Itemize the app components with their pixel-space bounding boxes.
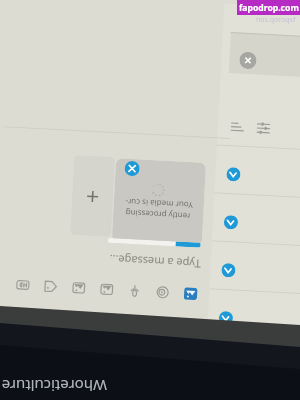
staticText: rently processing xyxy=(125,208,190,222)
button[interactable]: Sticker xyxy=(42,277,61,296)
button[interactable]: Gallery xyxy=(98,280,117,299)
button[interactable]: Photos xyxy=(182,285,201,304)
staticText: fapodrop.com xyxy=(239,2,299,14)
button[interactable] xyxy=(113,288,235,342)
button[interactable]: Camera xyxy=(70,279,89,298)
button[interactable]: Voice message xyxy=(126,282,145,301)
staticText: Whoreticulture xyxy=(1,376,107,396)
staticText: Your media is cur- xyxy=(125,197,193,211)
button[interactable] xyxy=(120,144,243,199)
button[interactable]: Filter xyxy=(253,118,274,139)
button[interactable]: Close xyxy=(239,51,257,69)
button[interactable] xyxy=(118,192,240,247)
button[interactable]: Loop xyxy=(154,283,173,302)
button[interactable]: Cancel upload xyxy=(124,161,140,176)
button[interactable]: HD quality xyxy=(14,276,33,295)
button[interactable]: Add attachment xyxy=(70,155,115,237)
staticText: nos.qoroqsf xyxy=(256,15,296,25)
button[interactable] xyxy=(115,240,238,295)
button[interactable]: Sort xyxy=(227,117,248,138)
staticText: Type a message... xyxy=(108,252,201,272)
